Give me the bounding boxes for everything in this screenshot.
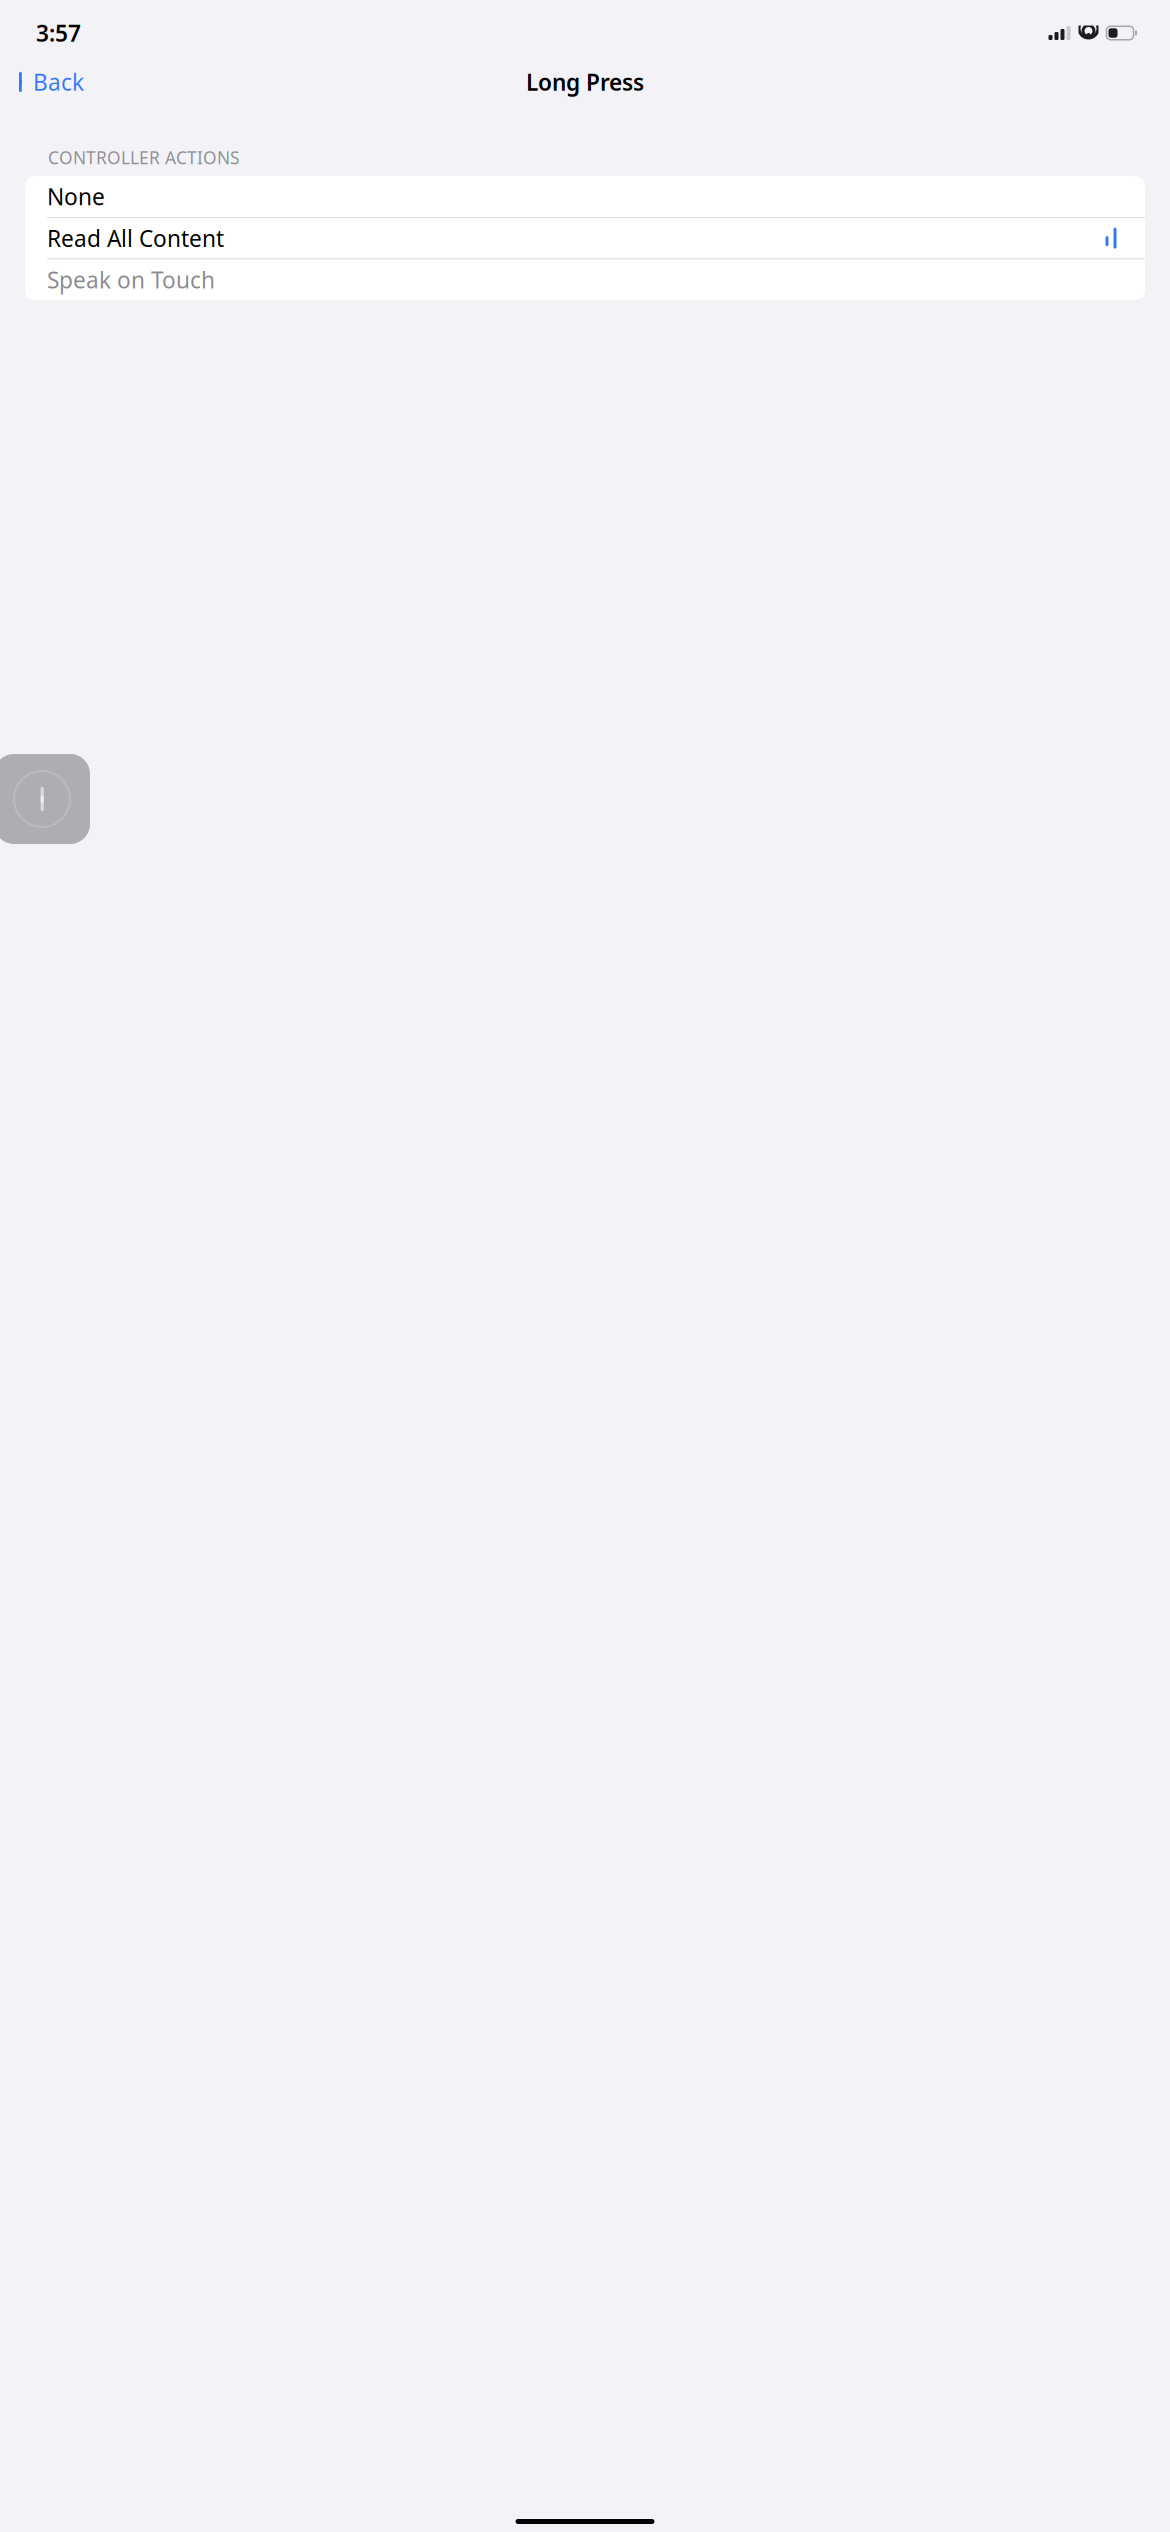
staticText: Long Press [526,67,644,97]
staticText: None [47,181,105,212]
staticText: CONTROLLER ACTIONS [48,146,240,169]
staticText: 3:57 [36,18,81,48]
button[interactable]: Speak on Touch [25,259,1145,300]
staticText: Read All Content [47,223,224,253]
button[interactable]: None [25,176,1145,217]
staticText: Speak on Touch [47,265,215,295]
button[interactable]: Read All Content [25,218,1145,259]
staticText: Back [33,67,84,97]
button[interactable]: AssistiveTouch [0,754,90,844]
button[interactable]: Back [0,59,94,105]
